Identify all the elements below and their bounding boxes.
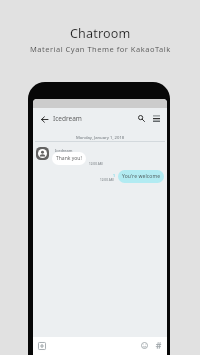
button[interactable]: Search — [136, 113, 147, 124]
button[interactable]: Emoji — [139, 340, 150, 351]
staticText: Material Cyan Theme for KakaoTalk — [30, 44, 171, 54]
staticText: 12:00 AM — [100, 178, 114, 182]
staticText: 1 — [113, 173, 116, 178]
button[interactable]: Hashtag — [153, 340, 164, 351]
staticText: 12:00 AM — [89, 162, 103, 166]
staticText: Thank you! — [56, 155, 82, 162]
button[interactable]: Menu — [151, 113, 162, 124]
button[interactable]: Back — [39, 114, 50, 125]
staticText: You're welcome — [122, 173, 161, 180]
staticText: Monday, January 1, 2018 — [76, 135, 125, 141]
staticText: Icedream — [53, 114, 82, 123]
staticText: Chatroom — [70, 25, 131, 42]
button[interactable]: Add attachment — [36, 340, 47, 351]
staticText: Icedream — [55, 148, 73, 153]
